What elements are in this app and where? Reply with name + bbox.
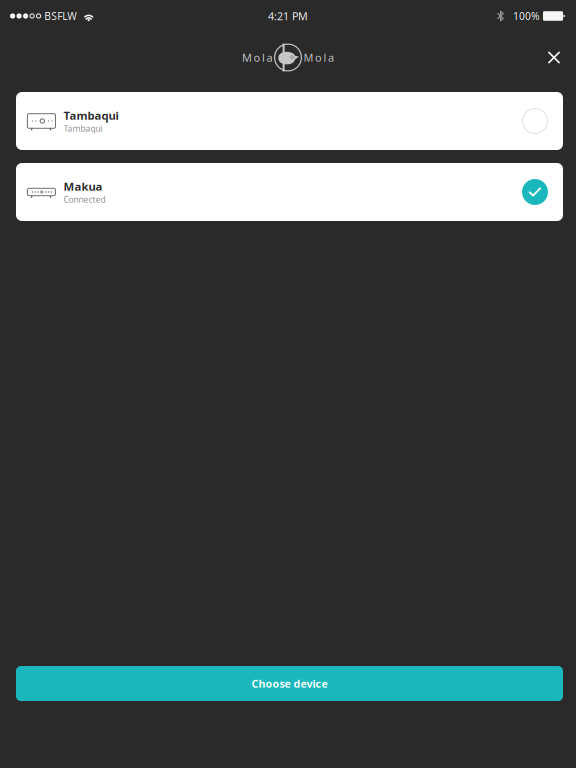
button[interactable]: Choose device (16, 666, 563, 701)
staticText: Mola (242, 50, 272, 65)
staticText: Tambaqui (63, 123, 102, 134)
staticText: Tambaqui (63, 108, 118, 123)
staticText: 100% (513, 9, 540, 23)
button[interactable]: Tambaqui (16, 92, 563, 150)
staticText: Makua (63, 179, 102, 194)
staticText: Choose device (251, 676, 327, 691)
staticText: 4:21 PM (268, 9, 308, 23)
button[interactable]: Close (532, 35, 576, 79)
button[interactable]: Makua (16, 163, 563, 221)
staticText: Connected (63, 194, 105, 205)
staticText: BSFLW (44, 9, 77, 23)
staticText: Mola (303, 50, 334, 65)
